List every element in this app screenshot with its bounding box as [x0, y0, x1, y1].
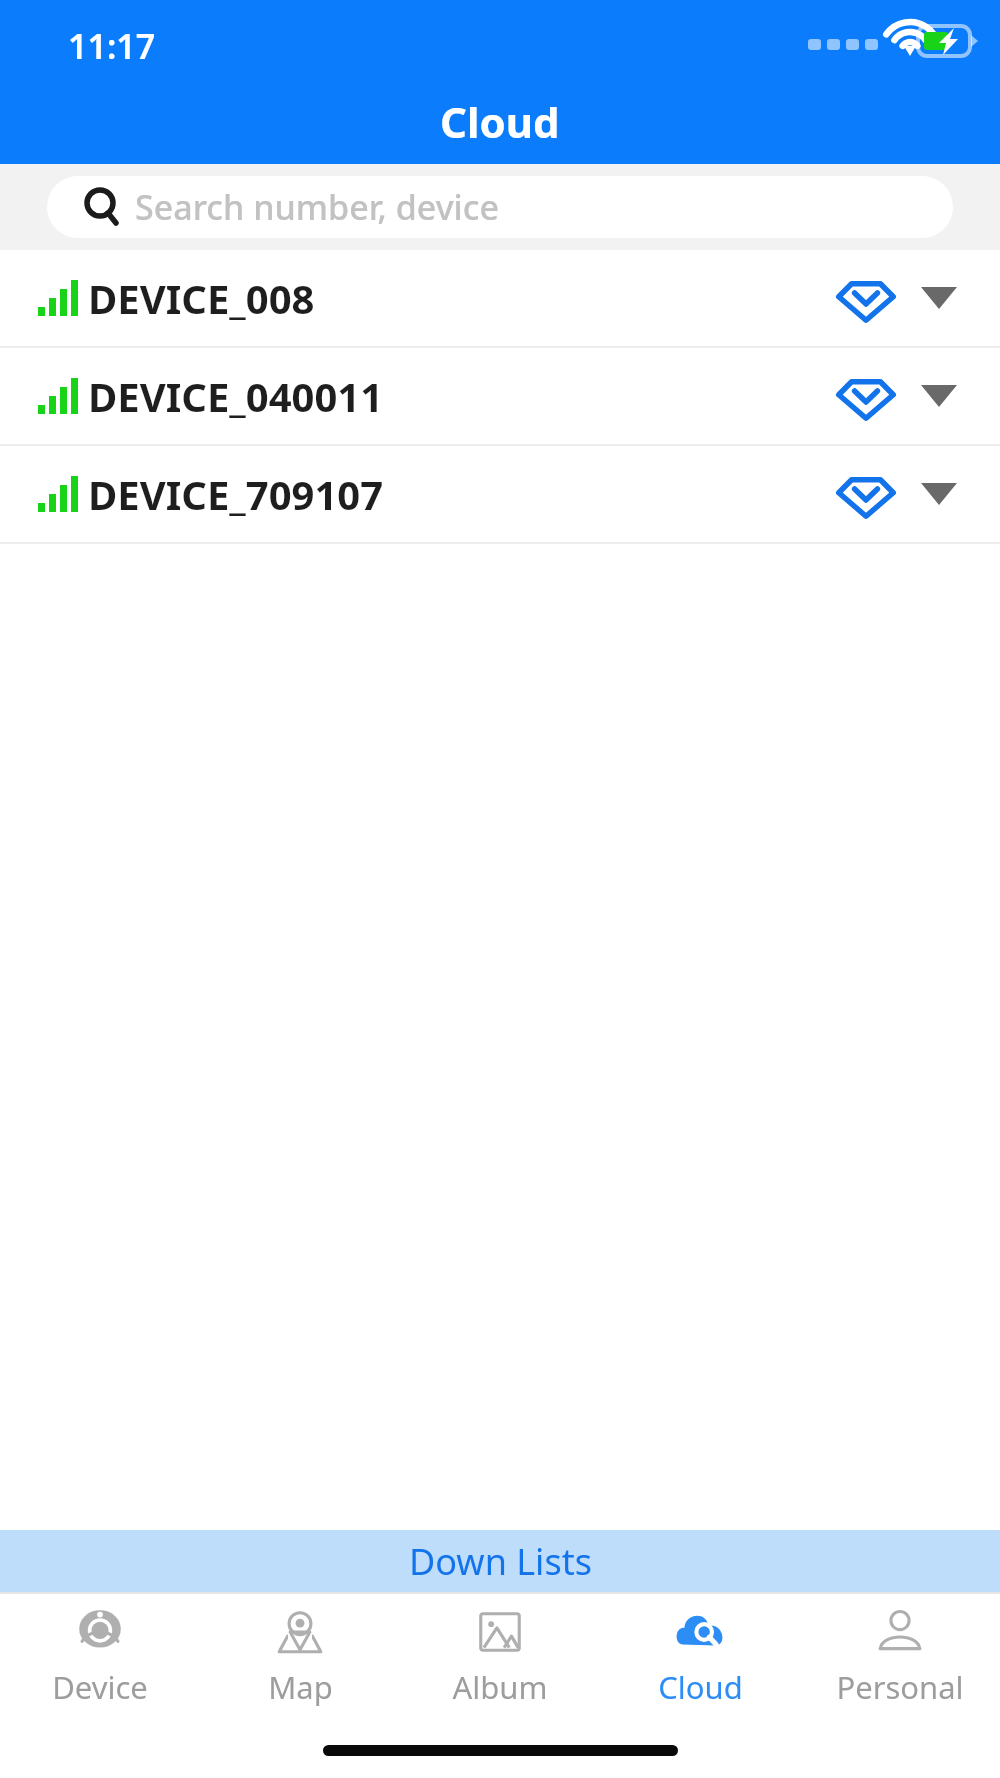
button[interactable]: Expand	[908, 463, 970, 525]
button[interactable]: Personal	[800, 1592, 1000, 1722]
staticText: DEVICE_008	[88, 271, 315, 325]
button[interactable]: Expand	[908, 267, 970, 329]
staticText: Down Lists	[409, 1537, 592, 1586]
staticText: Map	[268, 1666, 333, 1708]
button[interactable]: Cloud storage	[830, 262, 902, 334]
button[interactable]: Cloud storage	[830, 360, 902, 432]
staticText: DEVICE_040011	[88, 369, 384, 423]
staticText: Device	[52, 1666, 148, 1708]
staticText: Cloud	[658, 1666, 743, 1708]
button[interactable]: Cloud storage	[830, 458, 902, 530]
button[interactable]: DEVICE_040011	[0, 348, 1000, 444]
button[interactable]: DEVICE_709107	[0, 446, 1000, 542]
staticText: 11:17	[68, 23, 156, 69]
staticText: Search number, device	[135, 184, 499, 230]
button[interactable]: Expand	[908, 365, 970, 427]
button[interactable]: Map	[200, 1592, 400, 1722]
staticText: Cloud	[440, 93, 560, 150]
button[interactable]: Album	[400, 1592, 600, 1722]
staticText: Album	[452, 1666, 548, 1708]
staticText: DEVICE_709107	[88, 467, 384, 521]
button[interactable]: Search number, device	[47, 176, 953, 238]
button[interactable]: Device	[0, 1592, 200, 1722]
button[interactable]: Down Lists	[0, 1530, 1000, 1592]
button[interactable]: DEVICE_008	[0, 250, 1000, 346]
button[interactable]: Cloud	[600, 1592, 800, 1722]
staticText: Personal	[836, 1666, 964, 1708]
